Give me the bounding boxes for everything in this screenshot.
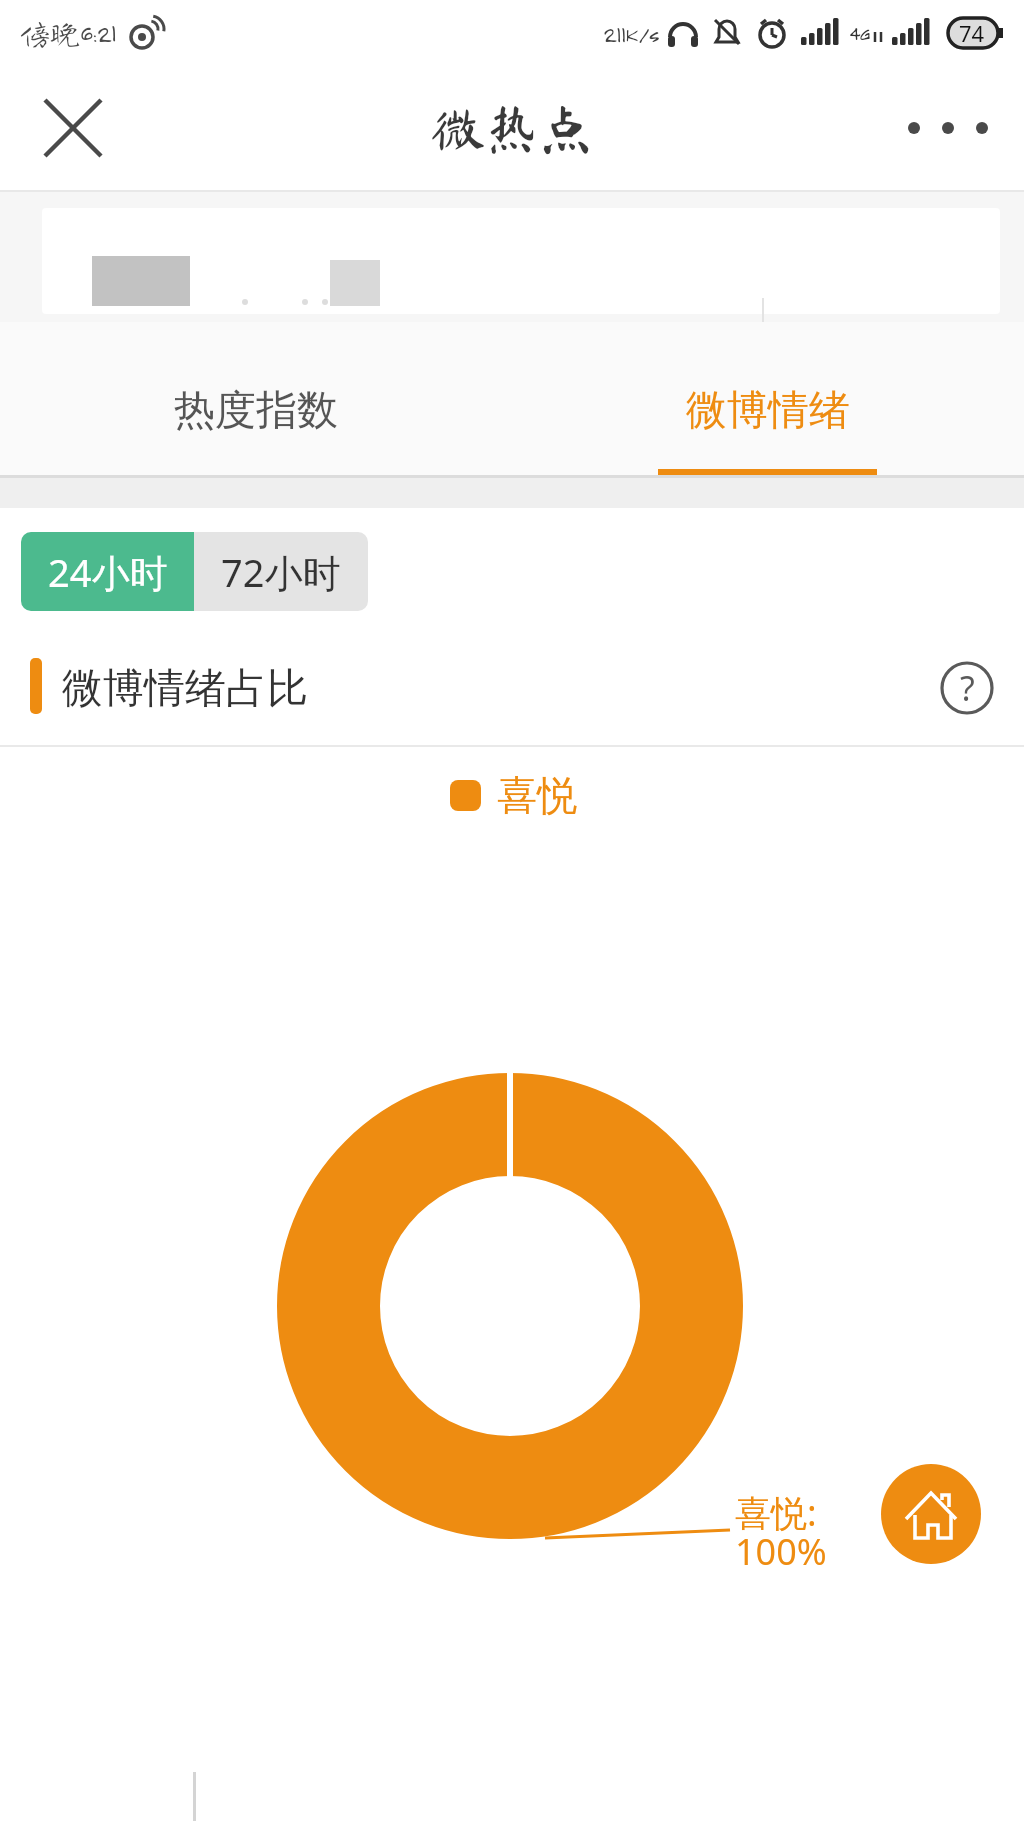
button[interactable]: 喜悦 bbox=[450, 770, 577, 820]
staticText: 100% bbox=[735, 1527, 827, 1576]
staticText: 微博情绪占比 bbox=[62, 663, 308, 715]
staticText: ? bbox=[960, 665, 975, 711]
staticText: 微热点 bbox=[431, 101, 593, 155]
staticText: 72小时 bbox=[221, 546, 341, 598]
staticText: 傍晚6:21 bbox=[20, 18, 116, 48]
button[interactable]: ? bbox=[936, 657, 998, 719]
button[interactable]: 24小时 bbox=[21, 532, 194, 611]
staticText: 喜悦 bbox=[497, 770, 577, 820]
button[interactable]: 72小时 bbox=[194, 532, 368, 611]
button[interactable] bbox=[30, 85, 116, 171]
button[interactable]: 热度指数 bbox=[0, 322, 512, 475]
staticText: 热度指数 bbox=[174, 385, 338, 437]
staticText: 211K/s bbox=[603, 19, 659, 47]
button[interactable] bbox=[881, 1464, 981, 1564]
button[interactable] bbox=[900, 93, 996, 163]
staticText: 74 bbox=[959, 18, 985, 48]
staticText: 微博情绪 bbox=[686, 385, 850, 437]
staticText: 喜悦: bbox=[735, 1488, 817, 1537]
staticText: 24小时 bbox=[48, 546, 168, 598]
button[interactable]: 微博情绪 bbox=[512, 322, 1024, 475]
staticText: 4G bbox=[849, 21, 870, 45]
button[interactable] bbox=[42, 208, 1000, 314]
